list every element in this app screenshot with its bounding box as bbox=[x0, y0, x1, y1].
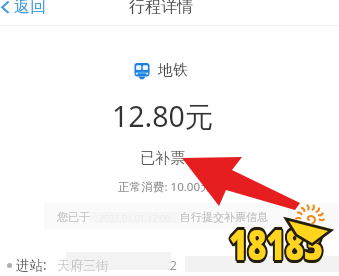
staticText: 18183 bbox=[228, 213, 322, 270]
staticText: 18183 bbox=[228, 218, 322, 276]
staticText: 18183 bbox=[231, 214, 325, 272]
staticText: 18183 bbox=[229, 217, 323, 274]
staticText: 18183 bbox=[229, 218, 323, 276]
staticText: 18183 bbox=[228, 214, 322, 272]
staticText: 您已于 bbox=[57, 210, 90, 224]
staticText: 已补票 bbox=[140, 149, 185, 168]
staticText: 自行提交补票信息 bbox=[180, 210, 268, 224]
staticText: 12.80元 bbox=[112, 97, 214, 136]
staticText: 18183 bbox=[227, 214, 321, 272]
staticText: 18183 bbox=[229, 213, 323, 270]
staticText: 18183 bbox=[231, 216, 325, 273]
button[interactable]: 进站: bbox=[0, 254, 339, 276]
staticText: 地铁 bbox=[158, 61, 188, 80]
staticText: 正常消费: 10.00元 bbox=[118, 179, 212, 195]
staticText: 天府三街 bbox=[57, 257, 109, 273]
staticText: 18183 bbox=[230, 216, 324, 273]
staticText: 18183 bbox=[231, 217, 325, 274]
staticText: 18183 bbox=[230, 217, 324, 274]
staticText: 返回 bbox=[14, 0, 46, 17]
staticText: 18183 bbox=[230, 213, 324, 270]
staticText: 2 bbox=[170, 257, 177, 273]
staticText: 18183 bbox=[228, 217, 322, 274]
staticText: 18183 bbox=[228, 216, 322, 273]
staticText: 18183 bbox=[229, 214, 323, 272]
staticText: 18183 bbox=[229, 216, 323, 273]
staticText: 进站: bbox=[16, 256, 47, 274]
staticText: 行程详情 bbox=[129, 0, 193, 17]
staticText: 18183 bbox=[230, 214, 324, 272]
staticText: 18183 bbox=[230, 218, 324, 276]
staticText: 18183 bbox=[227, 217, 321, 274]
button[interactable]: 返回 bbox=[0, 0, 52, 18]
staticText: 18183 bbox=[227, 216, 321, 273]
